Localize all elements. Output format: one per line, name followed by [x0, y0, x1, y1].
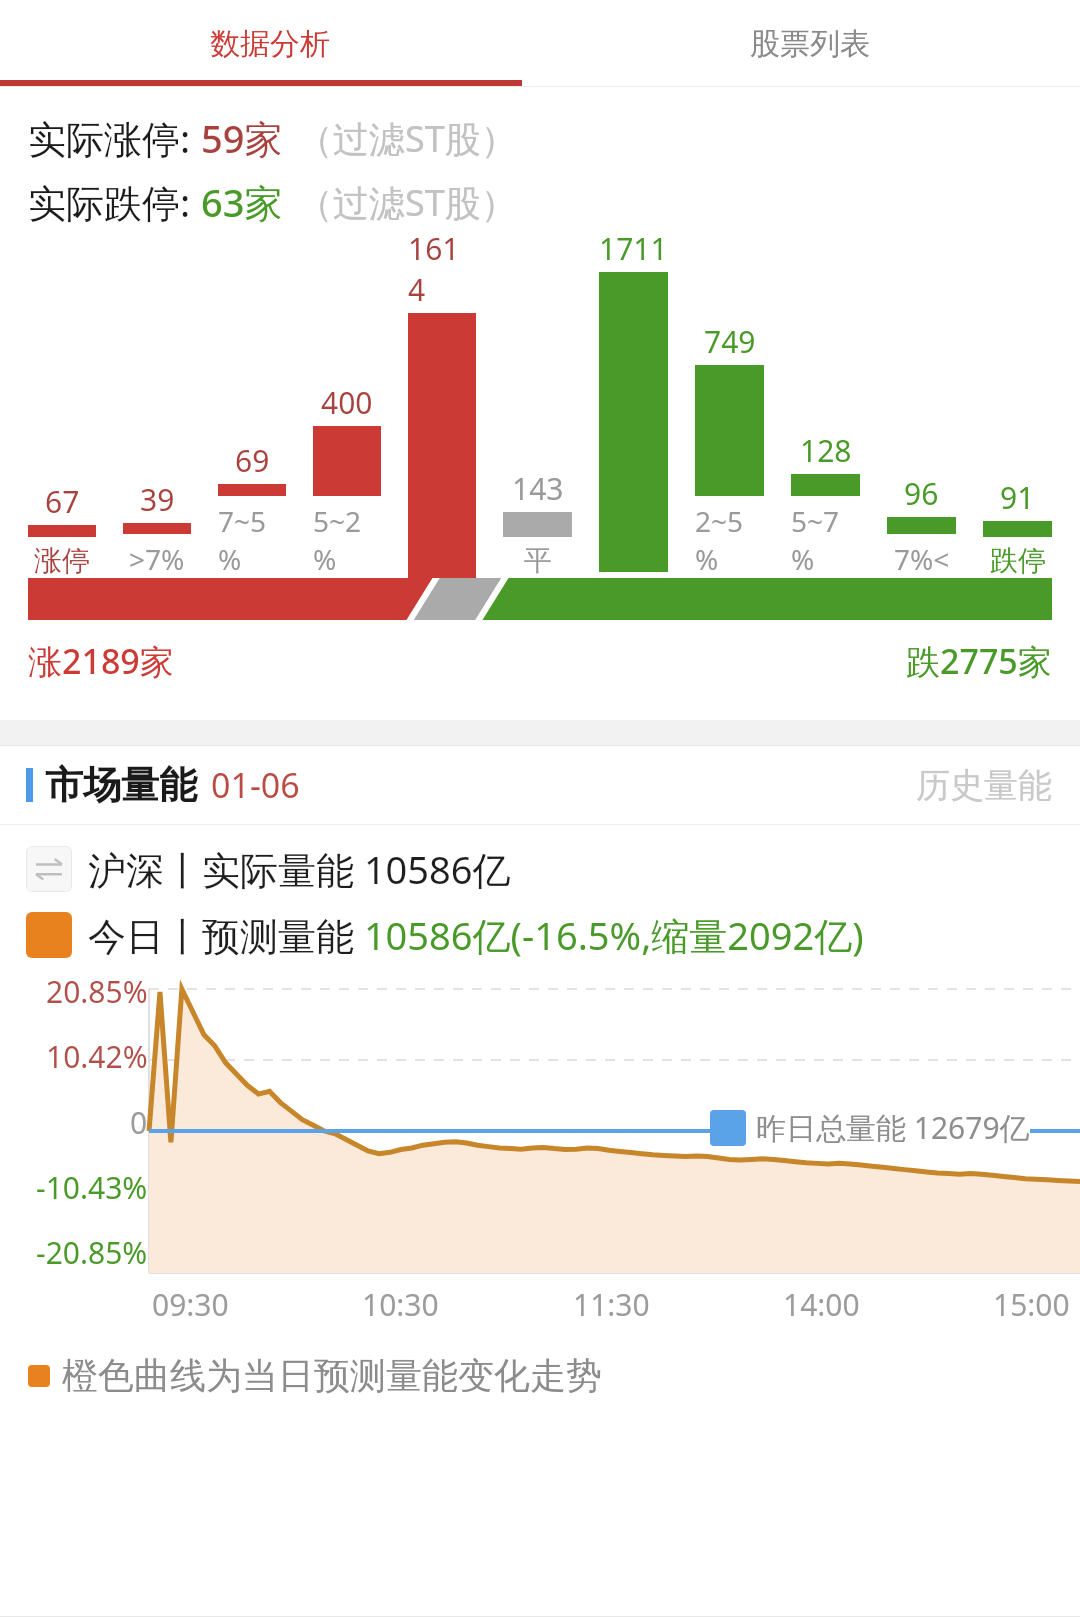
staticText: 0: [130, 1102, 148, 1143]
staticText: 20.85%: [46, 971, 148, 1012]
staticText: -20.85%: [36, 1232, 148, 1273]
staticText: 749: [704, 321, 756, 362]
button[interactable]: 数据分析: [0, 0, 540, 87]
staticText: 涨停: [34, 543, 90, 578]
staticText: 跌2775家: [906, 638, 1052, 684]
staticText: 14:00: [783, 1284, 860, 1325]
staticText: 平: [524, 543, 552, 578]
button[interactable]: 历史量能: [916, 764, 1052, 807]
staticText: 股票列表: [750, 25, 870, 63]
staticText: 7~5%: [218, 502, 286, 578]
staticText: 10:30: [362, 1284, 439, 1325]
staticText: 91: [1000, 477, 1035, 518]
staticText: 10.42%: [46, 1036, 148, 1077]
staticText: -10.43%: [36, 1167, 148, 1208]
staticText: 沪深丨实际量能 10586亿: [88, 843, 511, 895]
staticText: 市场量能: [45, 761, 197, 809]
staticText: 67: [45, 481, 80, 522]
staticText: 1711: [599, 228, 668, 269]
staticText: 实际涨停:: [28, 112, 201, 164]
staticText: >7%: [129, 540, 185, 578]
staticText: 5~7%: [791, 502, 860, 578]
staticText: 96: [904, 473, 939, 514]
staticText: 63家: [201, 176, 283, 228]
staticText: 59家: [201, 112, 283, 164]
staticText: 今日丨预测量能 10586亿(-16.5%,缩量2092亿): [88, 909, 864, 961]
staticText: 昨日总量能 12679亿: [756, 1107, 1030, 1148]
staticText: 11:30: [573, 1284, 650, 1325]
staticText: 橙色曲线为当日预测量能变化走势: [62, 1353, 602, 1398]
staticText: 涨2189家: [28, 638, 174, 684]
staticText: 143: [512, 468, 564, 509]
staticText: 历史量能: [916, 764, 1052, 807]
staticText: 39: [140, 479, 175, 520]
staticText: 09:30: [152, 1284, 229, 1325]
staticText: 69: [235, 440, 270, 481]
staticText: 5~2%: [313, 502, 381, 578]
staticText: 01-06: [211, 762, 300, 808]
staticText: 7%<: [894, 540, 950, 578]
staticText: 1614: [408, 228, 476, 310]
staticText: 数据分析: [210, 25, 330, 63]
staticText: 2~5%: [695, 502, 764, 578]
staticText: 15:00: [993, 1284, 1070, 1325]
button[interactable]: 股票列表: [540, 0, 1080, 87]
staticText: 128: [800, 430, 852, 471]
staticText: （过滤ST股）: [297, 178, 517, 227]
staticText: 400: [321, 382, 373, 423]
staticText: 跌停: [990, 543, 1046, 578]
staticText: （过滤ST股）: [297, 114, 517, 163]
staticText: 实际跌停:: [28, 176, 201, 228]
